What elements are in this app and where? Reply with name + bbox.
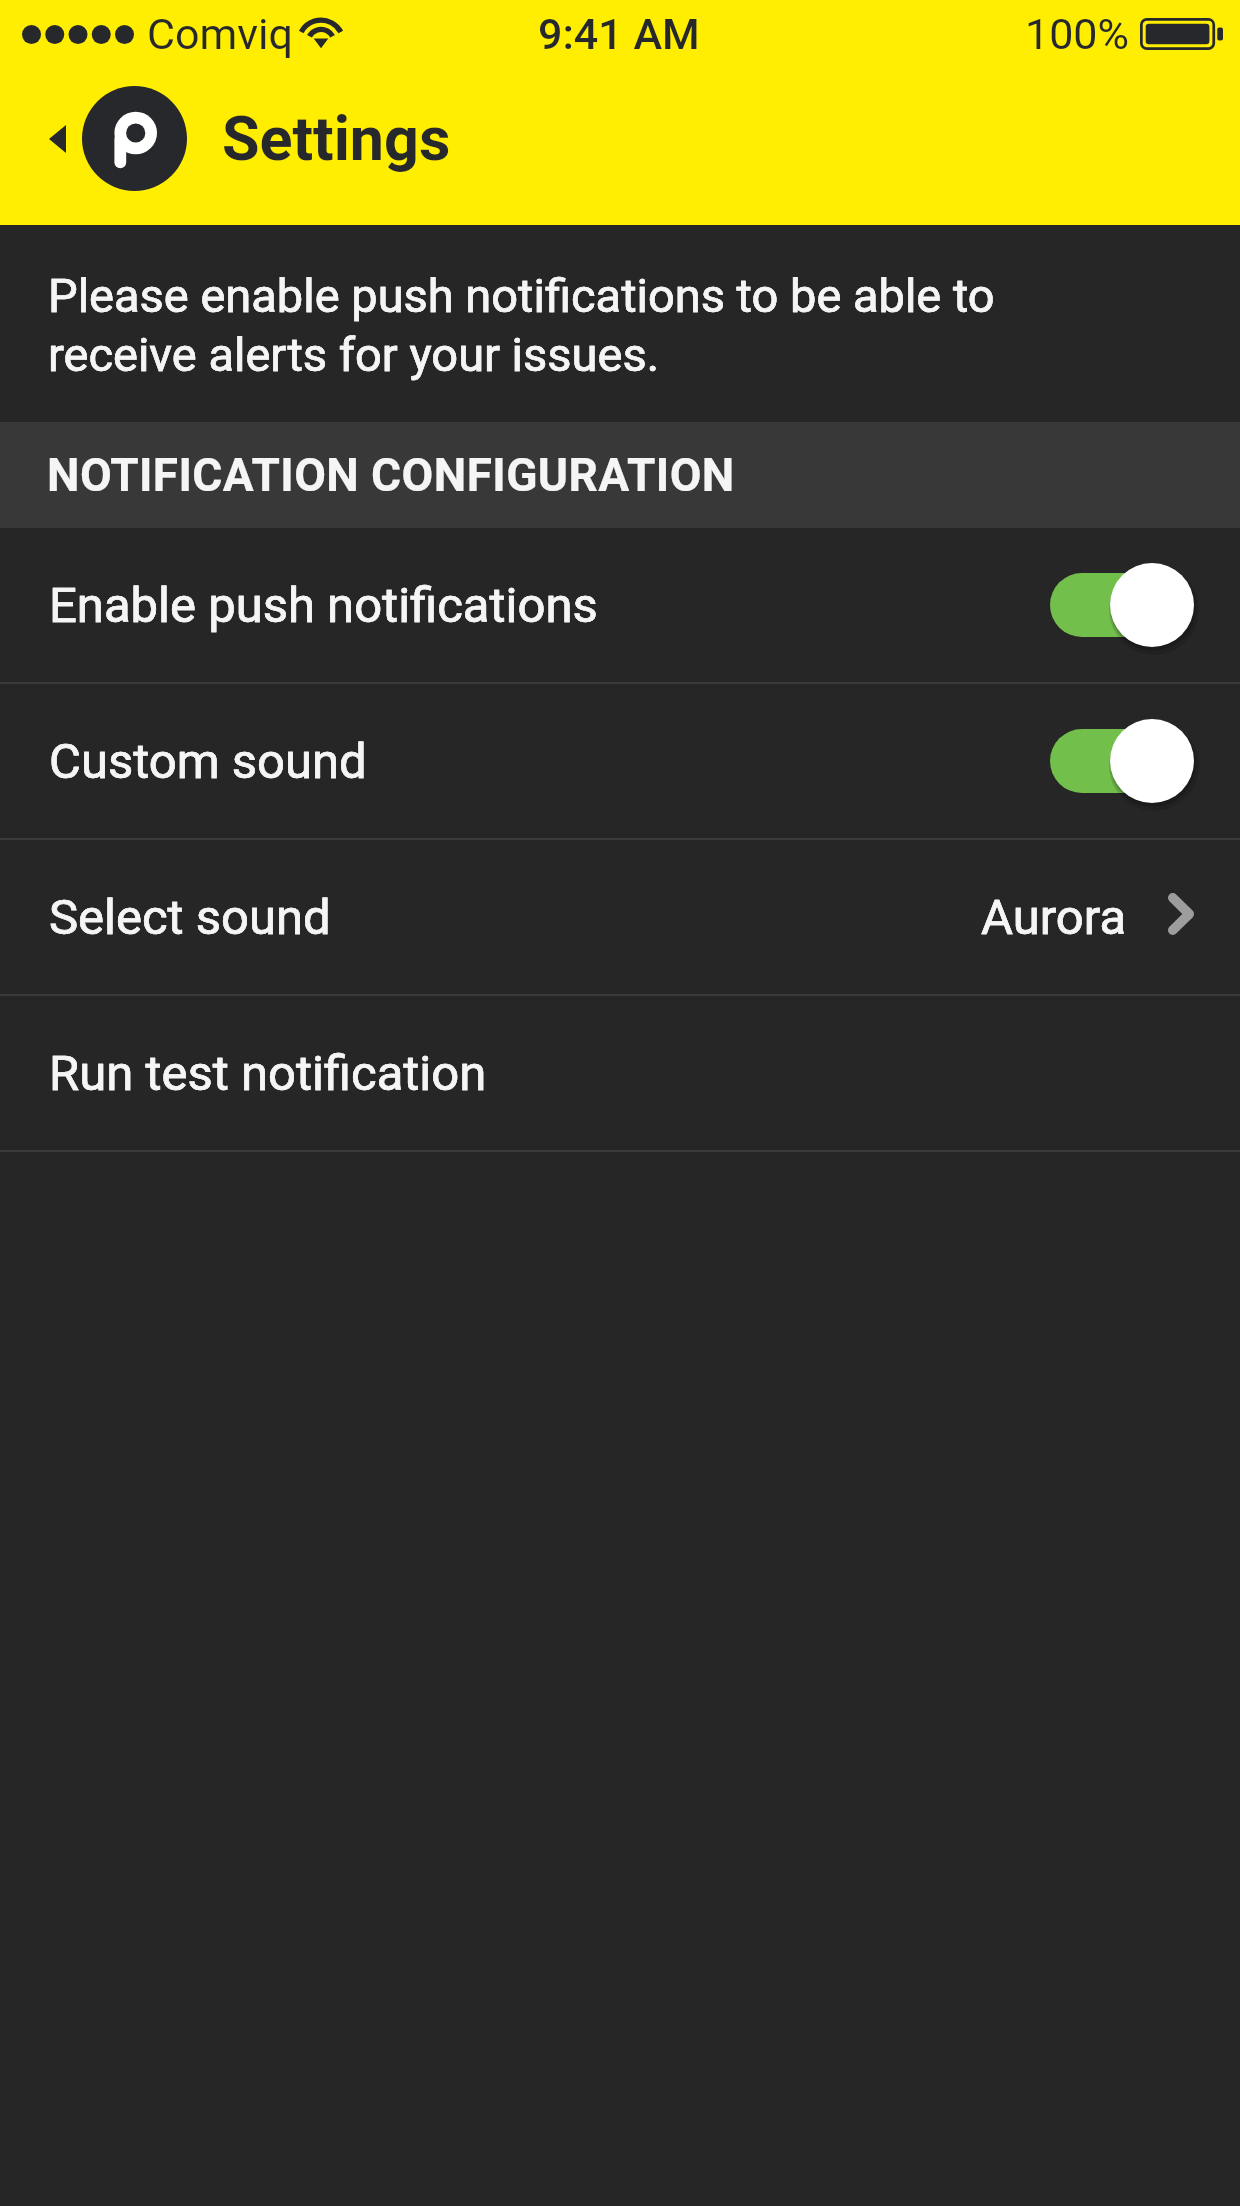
staticText: Enable push notifications [49,577,598,634]
staticText: Comviq [147,9,293,59]
button[interactable]: Back [49,86,187,191]
button[interactable]: Enable push notifications [0,528,1240,682]
staticText: 9:41 AM [538,9,700,59]
staticText: Aurora [981,889,1127,946]
staticText: Run test notification [49,1045,487,1102]
staticText: Settings [222,103,451,174]
staticText: Please enable push notifications to be a… [48,268,995,382]
button[interactable]: Run test notification [0,996,1240,1150]
button[interactable]: Toggle [1048,718,1194,804]
staticText: NOTIFICATION CONFIGURATION [47,448,735,502]
button[interactable]: Select sound [0,840,1240,994]
staticText: Custom sound [49,733,367,790]
button[interactable]: Custom sound [0,684,1240,838]
staticText: 100% [1025,9,1129,59]
button[interactable]: Toggle [1048,562,1194,648]
staticText: Select sound [49,889,331,946]
